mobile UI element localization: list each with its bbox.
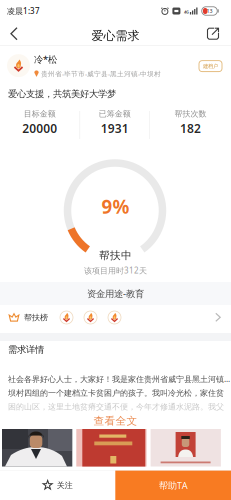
button[interactable]: 查看全文 bbox=[0, 414, 231, 427]
button[interactable]: Share bbox=[199, 22, 227, 45]
staticText: 帮扶次数 bbox=[174, 109, 206, 119]
staticText: 9% bbox=[101, 194, 129, 219]
button[interactable]: 帮助TA bbox=[115, 471, 231, 500]
staticText: 帮扶中 bbox=[99, 249, 132, 262]
staticText: 凌晨1:37 bbox=[7, 6, 40, 16]
staticText: 20000 bbox=[22, 120, 57, 136]
staticText: 需求详情 bbox=[8, 344, 44, 355]
staticText: 查看全文 bbox=[93, 414, 137, 427]
button[interactable]: Photo 1 bbox=[2, 429, 72, 466]
staticText: 建档户 bbox=[203, 63, 218, 69]
button[interactable]: Photo 3 bbox=[151, 429, 221, 466]
staticText: 13 bbox=[206, 7, 212, 15]
staticText: 资金用途-教育 bbox=[87, 287, 144, 300]
button[interactable]: 关注 bbox=[0, 471, 115, 500]
button[interactable]: 帮扶榜 bbox=[0, 305, 231, 333]
staticText: 1931 bbox=[101, 120, 129, 136]
staticText: 爱心支援，共筑美好大学梦 bbox=[8, 88, 116, 100]
staticText: 关注 bbox=[57, 480, 73, 490]
button[interactable]: Back bbox=[2, 22, 26, 45]
staticText: 4G bbox=[184, 9, 189, 14]
staticText: 该项目用时312天 bbox=[84, 265, 147, 276]
staticText: 帮助TA bbox=[159, 479, 188, 491]
staticText: 社会各界好心人士，大家好！我是家住贵州省威宁县黑土河镇中 bbox=[8, 373, 231, 384]
staticText: 已筹金额 bbox=[99, 109, 131, 119]
staticText: 冷*松 bbox=[34, 53, 57, 65]
staticText: 困的山区，这里土地贫瘠交通不便，今年才修通水泥路。我父 bbox=[8, 402, 224, 412]
staticText: 爱心需求 bbox=[91, 28, 139, 43]
staticText: 182 bbox=[180, 120, 201, 136]
staticText: 帮扶榜 bbox=[24, 313, 48, 322]
staticText: 目标金额 bbox=[24, 109, 56, 119]
button[interactable]: Photo 2 bbox=[76, 429, 147, 466]
staticText: 贵州省-毕节市-威宁县-黑土河镇-中坝村 bbox=[41, 69, 161, 78]
staticText: 坝村四组的一个建档立卡贫困户的孩子。我叫冷光松，家住贫 bbox=[8, 388, 224, 398]
